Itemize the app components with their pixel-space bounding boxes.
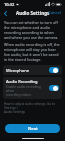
button[interactable]: Audio Recording: [3, 77, 62, 99]
button[interactable]: Toggle: [49, 67, 59, 73]
staticText: Cancel: [48, 10, 62, 16]
button[interactable]: Back: [0, 8, 10, 18]
staticText: When audio recording is off, the microph…: [4, 42, 61, 62]
button[interactable]: Toggle: [49, 85, 59, 91]
staticText: How to adjust audio settings: Go to Sett…: [4, 102, 61, 114]
staticText: You can set whether to turn off the micr…: [4, 20, 61, 40]
staticText: Microphone: [6, 68, 49, 73]
button[interactable]: Next: [5, 124, 60, 133]
staticText: Audio Settings: [16, 10, 50, 16]
staticText: Next: [28, 126, 38, 132]
staticText: Audio Recording: [6, 79, 38, 84]
button[interactable]: Cancel: [45, 8, 65, 18]
staticText: 10:32: [4, 2, 15, 7]
button[interactable]: Microphone: [3, 65, 62, 75]
staticText: Enable audio recording when recording vi…: [6, 85, 49, 97]
